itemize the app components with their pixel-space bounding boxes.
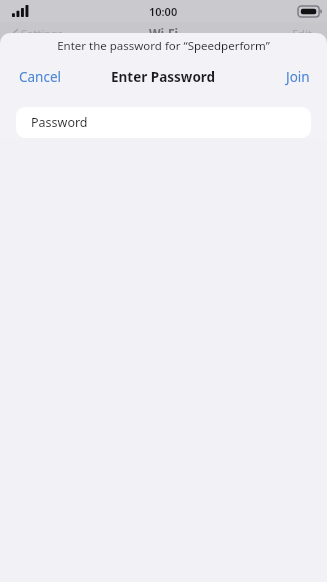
staticText: Edit [292,26,312,41]
staticText: Wi-Fi [149,25,179,41]
staticText: Settings [21,26,63,41]
staticText: 10:00 [149,4,178,19]
staticText: Join [286,68,310,86]
staticText: Enter Password [111,68,216,86]
staticText: Enter the password for “Speedperform” [57,38,270,54]
button[interactable]: Join [269,60,327,94]
button[interactable]: Password [16,107,311,138]
button[interactable]: Cancel [0,60,81,94]
staticText: Password [31,114,88,131]
staticText: Cancel [19,68,62,86]
